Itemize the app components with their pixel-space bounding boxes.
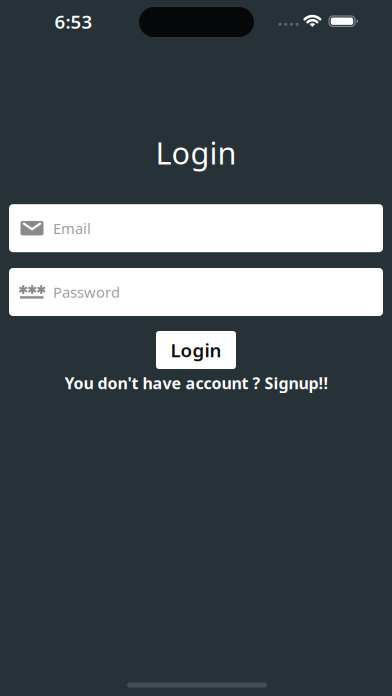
button[interactable]: You don't have account ? Signup!! [64, 372, 328, 394]
button[interactable]: Login [156, 331, 236, 369]
staticText: 6:53 [54, 9, 92, 34]
staticText: Login [170, 338, 221, 362]
button[interactable]: Password [9, 268, 383, 316]
staticText: Login [155, 132, 236, 173]
staticText: Password [53, 282, 120, 302]
staticText: You don't have account ? Signup!! [64, 372, 328, 394]
staticText: Email [53, 218, 91, 238]
button[interactable]: Email [9, 204, 383, 252]
